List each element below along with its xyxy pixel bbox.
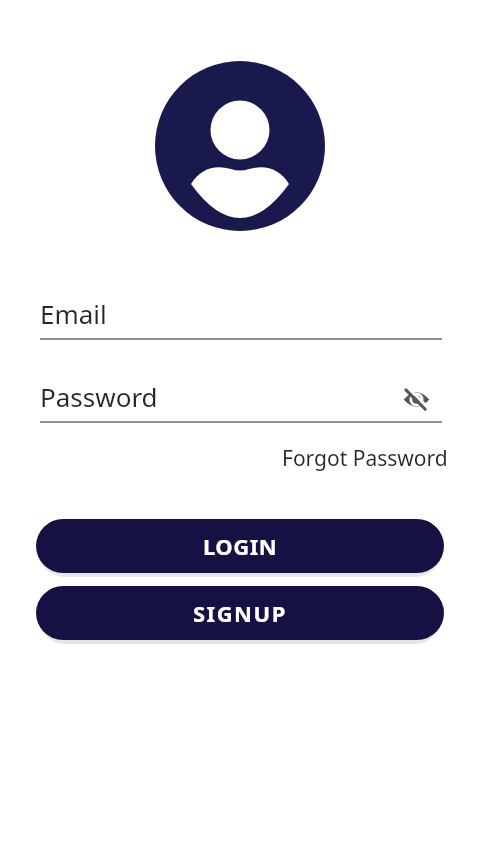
staticText: LOGIN <box>203 531 278 561</box>
staticText: Password <box>40 379 158 414</box>
button[interactable]: Password <box>40 379 442 423</box>
staticText: SIGNUP <box>193 598 287 628</box>
button[interactable]: Email <box>40 296 442 340</box>
button[interactable]: LOGIN <box>36 519 444 573</box>
staticText: Email <box>40 296 107 331</box>
button[interactable]: SIGNUP <box>36 586 444 640</box>
staticText: Forgot Password <box>282 444 448 473</box>
button[interactable]: Forgot Password <box>282 444 448 473</box>
button[interactable] <box>402 383 432 415</box>
